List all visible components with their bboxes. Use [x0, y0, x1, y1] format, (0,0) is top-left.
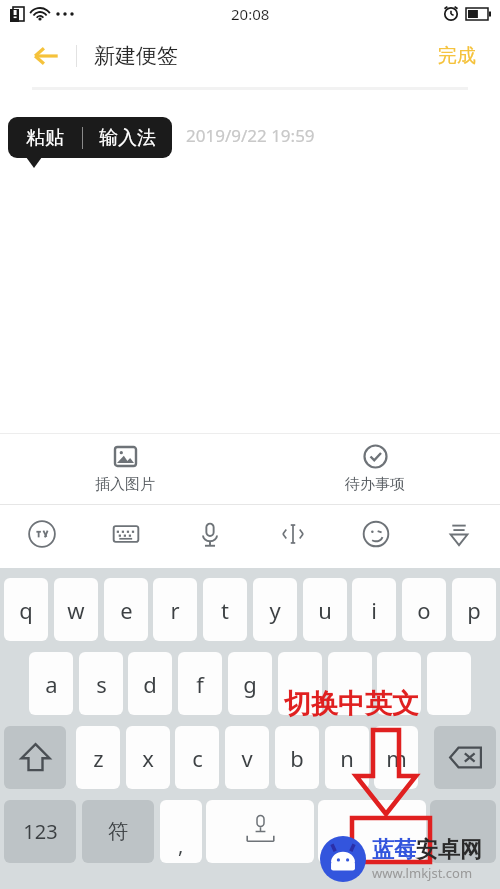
- button[interactable]: Space: [206, 800, 314, 863]
- staticText: 粘贴: [26, 126, 64, 150]
- button[interactable]: 待办事项: [250, 433, 500, 505]
- staticText: 123: [23, 818, 58, 845]
- button[interactable]: b: [275, 726, 319, 789]
- button[interactable]: 插入图片: [0, 433, 250, 505]
- staticText: 完成: [438, 44, 476, 68]
- staticText: 插入图片: [95, 475, 155, 494]
- button[interactable]: 粘贴: [8, 117, 82, 158]
- staticText: r: [170, 595, 180, 625]
- staticText: 20:08: [231, 4, 270, 24]
- staticText: u: [318, 595, 332, 625]
- button[interactable]: n: [325, 726, 369, 789]
- button[interactable]: [318, 800, 426, 863]
- button[interactable]: [160, 800, 202, 863]
- button[interactable]: i: [352, 578, 396, 641]
- staticText: x: [142, 743, 154, 773]
- button[interactable]: [430, 800, 496, 863]
- button[interactable]: o: [402, 578, 446, 641]
- staticText: p: [467, 595, 481, 625]
- button[interactable]: Backspace: [434, 726, 496, 789]
- button[interactable]: [278, 652, 322, 715]
- button[interactable]: v: [225, 726, 269, 789]
- button[interactable]: [377, 652, 421, 715]
- staticText: s: [96, 669, 107, 699]
- button[interactable]: [328, 652, 372, 715]
- staticText: 新建便签: [94, 43, 178, 69]
- staticText: b: [290, 743, 304, 773]
- button[interactable]: t: [203, 578, 247, 641]
- button[interactable]: Shift: [4, 726, 66, 789]
- button[interactable]: f: [178, 652, 222, 715]
- button[interactable]: g: [228, 652, 272, 715]
- button[interactable]: [427, 652, 471, 715]
- staticText: v: [241, 743, 253, 773]
- staticText: w: [67, 595, 85, 625]
- button[interactable]: y: [253, 578, 297, 641]
- button[interactable]: z: [76, 726, 120, 789]
- button[interactable]: Move cursor: [251, 505, 334, 563]
- button[interactable]: d: [128, 652, 172, 715]
- button[interactable]: Back: [26, 36, 66, 76]
- staticText: f: [196, 669, 204, 699]
- button[interactable]: u: [303, 578, 347, 641]
- staticText: ,: [178, 832, 184, 859]
- button[interactable]: p: [452, 578, 496, 641]
- button[interactable]: w: [54, 578, 98, 641]
- button[interactable]: r: [153, 578, 197, 641]
- button[interactable]: 输入法: [83, 117, 172, 158]
- staticText: 符: [108, 819, 128, 844]
- staticText: 输入法: [99, 126, 156, 150]
- staticText: e: [120, 595, 133, 625]
- button[interactable]: m: [374, 726, 418, 789]
- button[interactable]: s: [79, 652, 123, 715]
- button[interactable]: 123: [4, 800, 76, 863]
- button[interactable]: e: [104, 578, 148, 641]
- button[interactable]: Keyboard layout: [84, 505, 168, 563]
- staticText: 安卓网: [416, 836, 482, 864]
- staticText: m: [386, 743, 407, 773]
- staticText: n: [340, 743, 354, 773]
- staticText: a: [45, 669, 58, 699]
- button[interactable]: Input method: [0, 505, 84, 563]
- staticText: 2019/9/22 19:59: [186, 124, 315, 147]
- button[interactable]: x: [126, 726, 170, 789]
- staticText: 切换中英文: [284, 687, 419, 721]
- staticText: 蓝莓: [372, 836, 416, 864]
- button[interactable]: Hide keyboard: [417, 505, 500, 563]
- staticText: t: [221, 595, 229, 625]
- button[interactable]: Emoji: [334, 505, 417, 563]
- staticText: 待办事项: [345, 475, 405, 494]
- button[interactable]: a: [29, 652, 73, 715]
- staticText: q: [19, 595, 33, 625]
- button[interactable]: 完成: [428, 38, 486, 74]
- button[interactable]: 符: [82, 800, 154, 863]
- staticText: i: [371, 595, 377, 625]
- staticText: z: [93, 743, 104, 773]
- staticText: g: [243, 669, 257, 699]
- button[interactable]: q: [4, 578, 48, 641]
- button[interactable]: c: [175, 726, 219, 789]
- staticText: y: [269, 595, 281, 625]
- staticText: o: [417, 595, 431, 625]
- staticText: d: [143, 669, 157, 699]
- staticText: www.lmkjst.com: [372, 864, 473, 882]
- button[interactable]: Voice input: [168, 505, 251, 563]
- staticText: c: [192, 743, 203, 773]
